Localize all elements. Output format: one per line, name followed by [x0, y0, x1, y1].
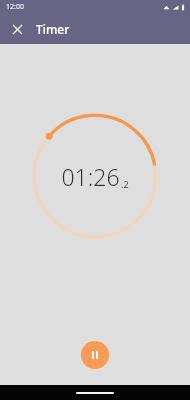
staticText: .2: [121, 178, 129, 190]
staticText: 01:26: [61, 161, 120, 192]
staticText: 12:00: [6, 2, 24, 12]
button[interactable]: Pause: [81, 341, 109, 369]
button[interactable]: Close: [4, 16, 30, 42]
staticText: Timer: [36, 21, 70, 37]
